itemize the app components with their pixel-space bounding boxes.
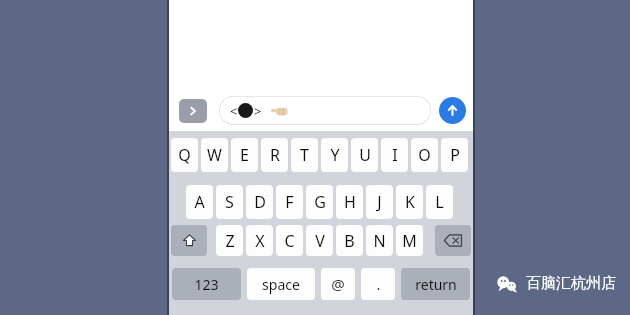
button[interactable]: Send bbox=[439, 97, 466, 124]
staticText: space bbox=[262, 275, 300, 294]
button[interactable]: G bbox=[306, 185, 333, 219]
staticText: L bbox=[435, 191, 444, 213]
staticText: R bbox=[270, 144, 280, 166]
button[interactable]: C bbox=[276, 225, 303, 256]
button[interactable]: Expand actions bbox=[179, 99, 207, 123]
button[interactable]: I bbox=[381, 138, 408, 172]
staticText: Z bbox=[225, 230, 235, 252]
button[interactable]: D bbox=[246, 185, 273, 219]
staticText: G bbox=[314, 191, 326, 213]
button[interactable]: A bbox=[186, 185, 213, 219]
button[interactable]: S bbox=[216, 185, 243, 219]
button[interactable]: E bbox=[231, 138, 258, 172]
staticText: V bbox=[315, 230, 325, 252]
button[interactable]: Q bbox=[171, 138, 198, 172]
staticText: Y bbox=[330, 144, 340, 166]
button[interactable]: M bbox=[396, 225, 423, 256]
staticText: M bbox=[402, 230, 417, 252]
button[interactable]: return bbox=[401, 268, 470, 300]
staticText: I bbox=[392, 144, 398, 166]
staticText: D bbox=[254, 191, 266, 213]
staticText: X bbox=[255, 230, 265, 252]
staticText: return bbox=[415, 275, 457, 294]
button[interactable]: Shift bbox=[171, 225, 207, 256]
button[interactable]: X bbox=[246, 225, 273, 256]
staticText: A bbox=[194, 191, 205, 213]
button[interactable]: J bbox=[366, 185, 393, 219]
staticText: T bbox=[300, 144, 309, 166]
button[interactable]: R bbox=[261, 138, 288, 172]
button[interactable]: . bbox=[361, 268, 395, 300]
staticText: @ bbox=[331, 274, 345, 294]
staticText: N bbox=[373, 230, 386, 252]
button[interactable]: P bbox=[441, 138, 468, 172]
button[interactable]: 123 bbox=[172, 268, 241, 300]
button[interactable]: @ bbox=[321, 268, 355, 300]
staticText: B bbox=[344, 230, 355, 252]
button[interactable]: U bbox=[351, 138, 378, 172]
button[interactable]: W bbox=[201, 138, 228, 172]
button[interactable]: V bbox=[306, 225, 333, 256]
staticText: > bbox=[254, 102, 262, 120]
button[interactable]: H bbox=[336, 185, 363, 219]
staticText: Q bbox=[178, 144, 191, 166]
staticText: K bbox=[405, 191, 415, 213]
staticText: O bbox=[418, 144, 431, 166]
button[interactable]: N bbox=[366, 225, 393, 256]
staticText: W bbox=[207, 144, 222, 166]
button[interactable]: L bbox=[426, 185, 453, 219]
staticText: P bbox=[450, 144, 460, 166]
button[interactable]: < bbox=[219, 96, 431, 125]
button[interactable]: Y bbox=[321, 138, 348, 172]
staticText: F bbox=[285, 191, 294, 213]
staticText: < bbox=[230, 102, 238, 120]
staticText: U bbox=[359, 144, 371, 166]
staticText: J bbox=[377, 191, 382, 213]
staticText: C bbox=[284, 230, 295, 252]
staticText: S bbox=[225, 191, 234, 213]
button[interactable]: K bbox=[396, 185, 423, 219]
staticText: 百脑汇杭州店 bbox=[526, 274, 616, 293]
button[interactable]: F bbox=[276, 185, 303, 219]
button[interactable]: space bbox=[247, 268, 315, 300]
staticText: . bbox=[376, 274, 381, 294]
staticText: H bbox=[344, 191, 356, 213]
button[interactable]: T bbox=[291, 138, 318, 172]
button[interactable]: Z bbox=[216, 225, 243, 256]
button[interactable]: Backspace bbox=[435, 225, 471, 256]
button[interactable]: B bbox=[336, 225, 363, 256]
staticText: 123 bbox=[194, 275, 219, 294]
button[interactable]: O bbox=[411, 138, 438, 172]
staticText: E bbox=[240, 144, 249, 166]
